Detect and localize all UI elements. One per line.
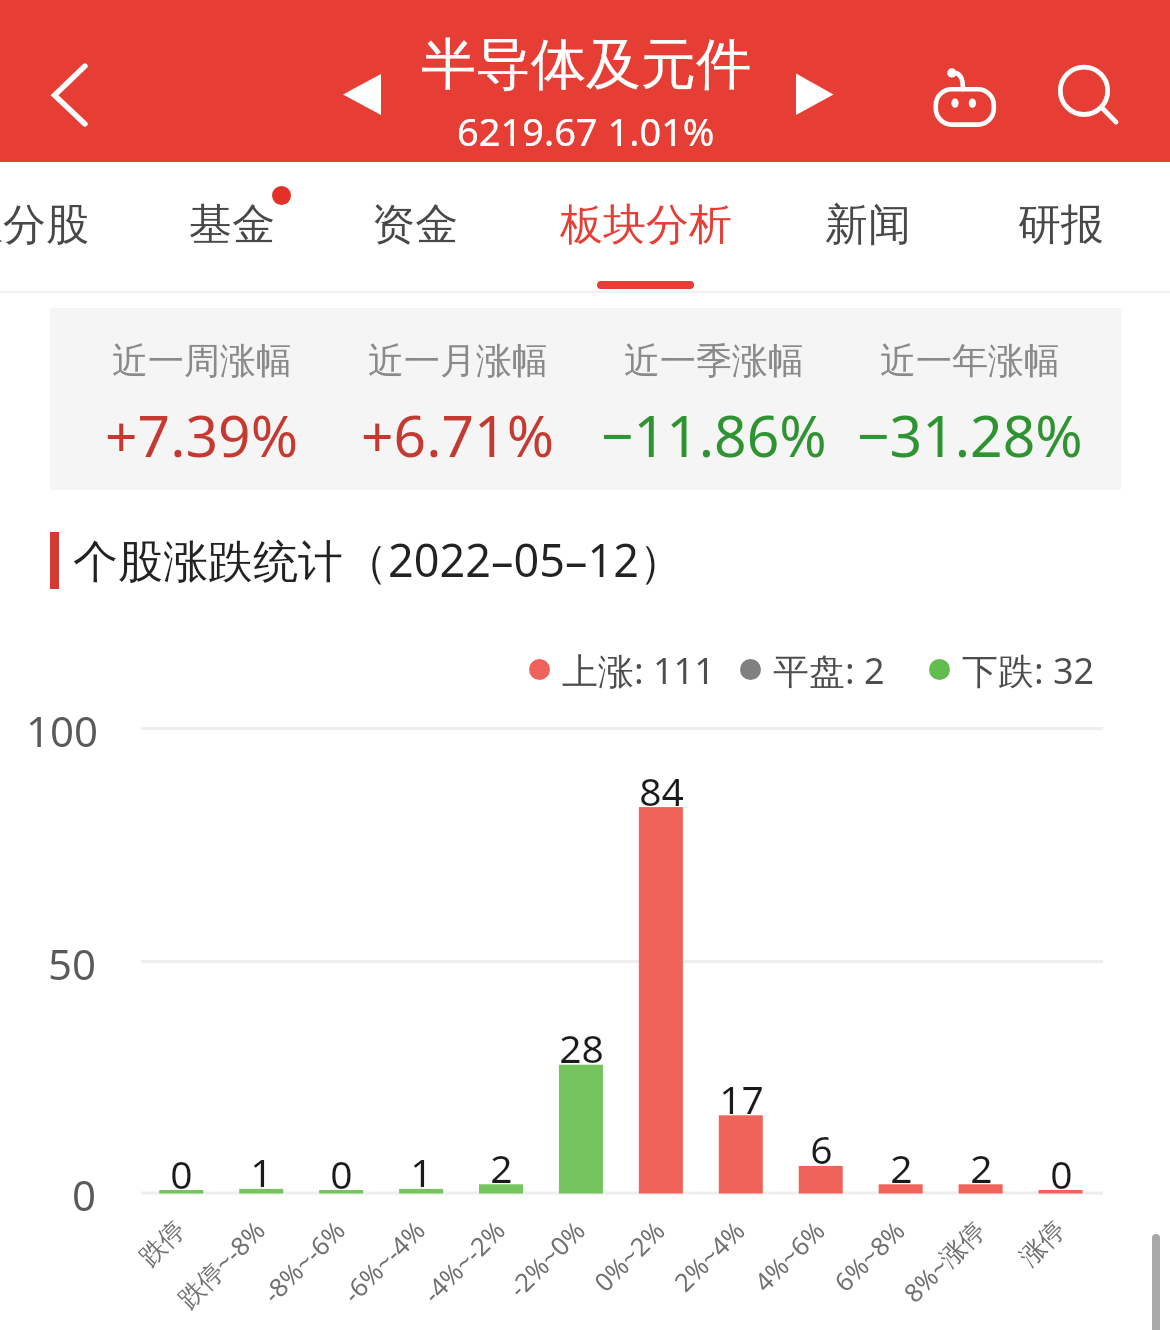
staticText: 2 [970,1141,993,1194]
button[interactable]: Back [20,40,120,150]
button[interactable]: 近一月涨幅 [330,310,586,488]
staticText: 上涨: 111 [562,646,715,692]
button[interactable]: AI assistant [913,42,1013,142]
button[interactable]: 下跌: 32 [929,646,1095,692]
staticText: 4%~6% [746,1213,833,1299]
staticText: 8%~涨停 [896,1213,993,1310]
staticText: 6219.67 1.01% [457,105,715,150]
staticText: 个股涨跌统计（2022–05–12） [73,529,684,590]
button[interactable]: 资金 [345,168,485,280]
staticText: 半导体及元件 [421,30,751,99]
staticText: 50 [48,935,97,992]
staticText: 2 [890,1141,913,1194]
button[interactable]: 平盘: 2 [740,646,885,692]
staticText: −31.28% [857,396,1083,458]
button[interactable]: 权分股 [0,168,116,280]
staticText: 2%~4% [666,1213,753,1299]
staticText: 28 [559,1021,604,1074]
staticText: 平盘: 2 [773,646,885,692]
staticText: -8%~-6% [255,1213,353,1311]
button[interactable]: 近一季涨幅 [586,310,842,488]
button[interactable]: Next sector [776,56,854,134]
button[interactable]: 研报 [991,168,1131,280]
staticText: -4%~-2% [415,1213,513,1311]
staticText: 0 [330,1147,353,1200]
staticText: 0%~2% [586,1213,673,1299]
button[interactable]: 板块分析 [532,168,760,280]
staticText: 100 [26,702,99,759]
staticText: 新闻 [825,198,911,252]
staticText: 板块分析 [560,198,732,252]
staticText: -2%~0% [501,1213,593,1305]
staticText: 84 [639,764,684,817]
staticText: 0 [170,1147,193,1200]
staticText: 权分股 [0,198,89,252]
staticText: 近一季涨幅 [624,338,804,383]
staticText: 6%~8% [826,1213,913,1299]
button[interactable]: 基金 [162,168,302,280]
button[interactable]: 近一年涨幅 [842,310,1098,488]
button[interactable]: 新闻 [798,168,938,280]
staticText: 近一周涨幅 [112,338,292,383]
staticText: 17 [719,1072,764,1125]
button[interactable]: Search [1044,46,1144,146]
staticText: 基金 [189,198,275,252]
staticText: 近一年涨幅 [880,338,1060,383]
staticText: 0 [72,1166,97,1223]
staticText: 2 [490,1141,513,1194]
staticText: 0 [1050,1147,1073,1200]
staticText: +6.71% [361,396,555,458]
staticText: +7.39% [105,396,299,458]
staticText: −11.86% [601,396,827,458]
staticText: 近一月涨幅 [368,338,548,383]
staticText: 资金 [372,198,458,252]
button[interactable]: Previous sector [323,56,401,134]
staticText: 下跌: 32 [962,646,1095,692]
button[interactable]: 上涨: 111 [529,646,715,692]
staticText: 1 [410,1145,433,1198]
staticText: 6 [810,1122,833,1175]
staticText: 研报 [1018,198,1104,252]
staticText: 涨停 [1013,1214,1071,1272]
staticText: 跌停~-8% [170,1213,273,1315]
staticText: 跌停 [133,1214,191,1272]
staticText: -6%~-4% [335,1213,433,1311]
button[interactable]: 近一周涨幅 [74,310,330,488]
staticText: 1 [250,1145,273,1198]
